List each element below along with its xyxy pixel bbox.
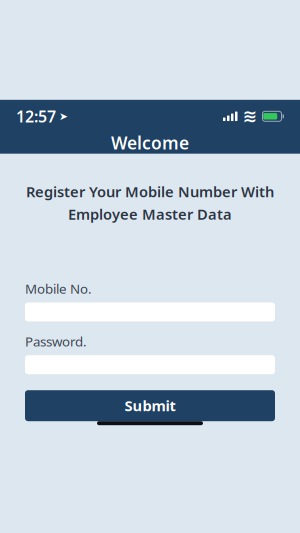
staticText: Submit	[124, 396, 175, 415]
staticText: ≋	[242, 106, 257, 126]
staticText: Register Your Mobile Number With	[26, 182, 274, 201]
staticText: 12:57	[16, 106, 56, 127]
staticText: ➤	[56, 110, 68, 122]
button[interactable]: Submit	[25, 390, 275, 421]
staticText: Mobile No.	[25, 280, 92, 297]
staticText: Welcome	[111, 131, 189, 154]
staticText: Employee Master Data	[68, 204, 232, 224]
staticText: Password.	[25, 332, 87, 350]
